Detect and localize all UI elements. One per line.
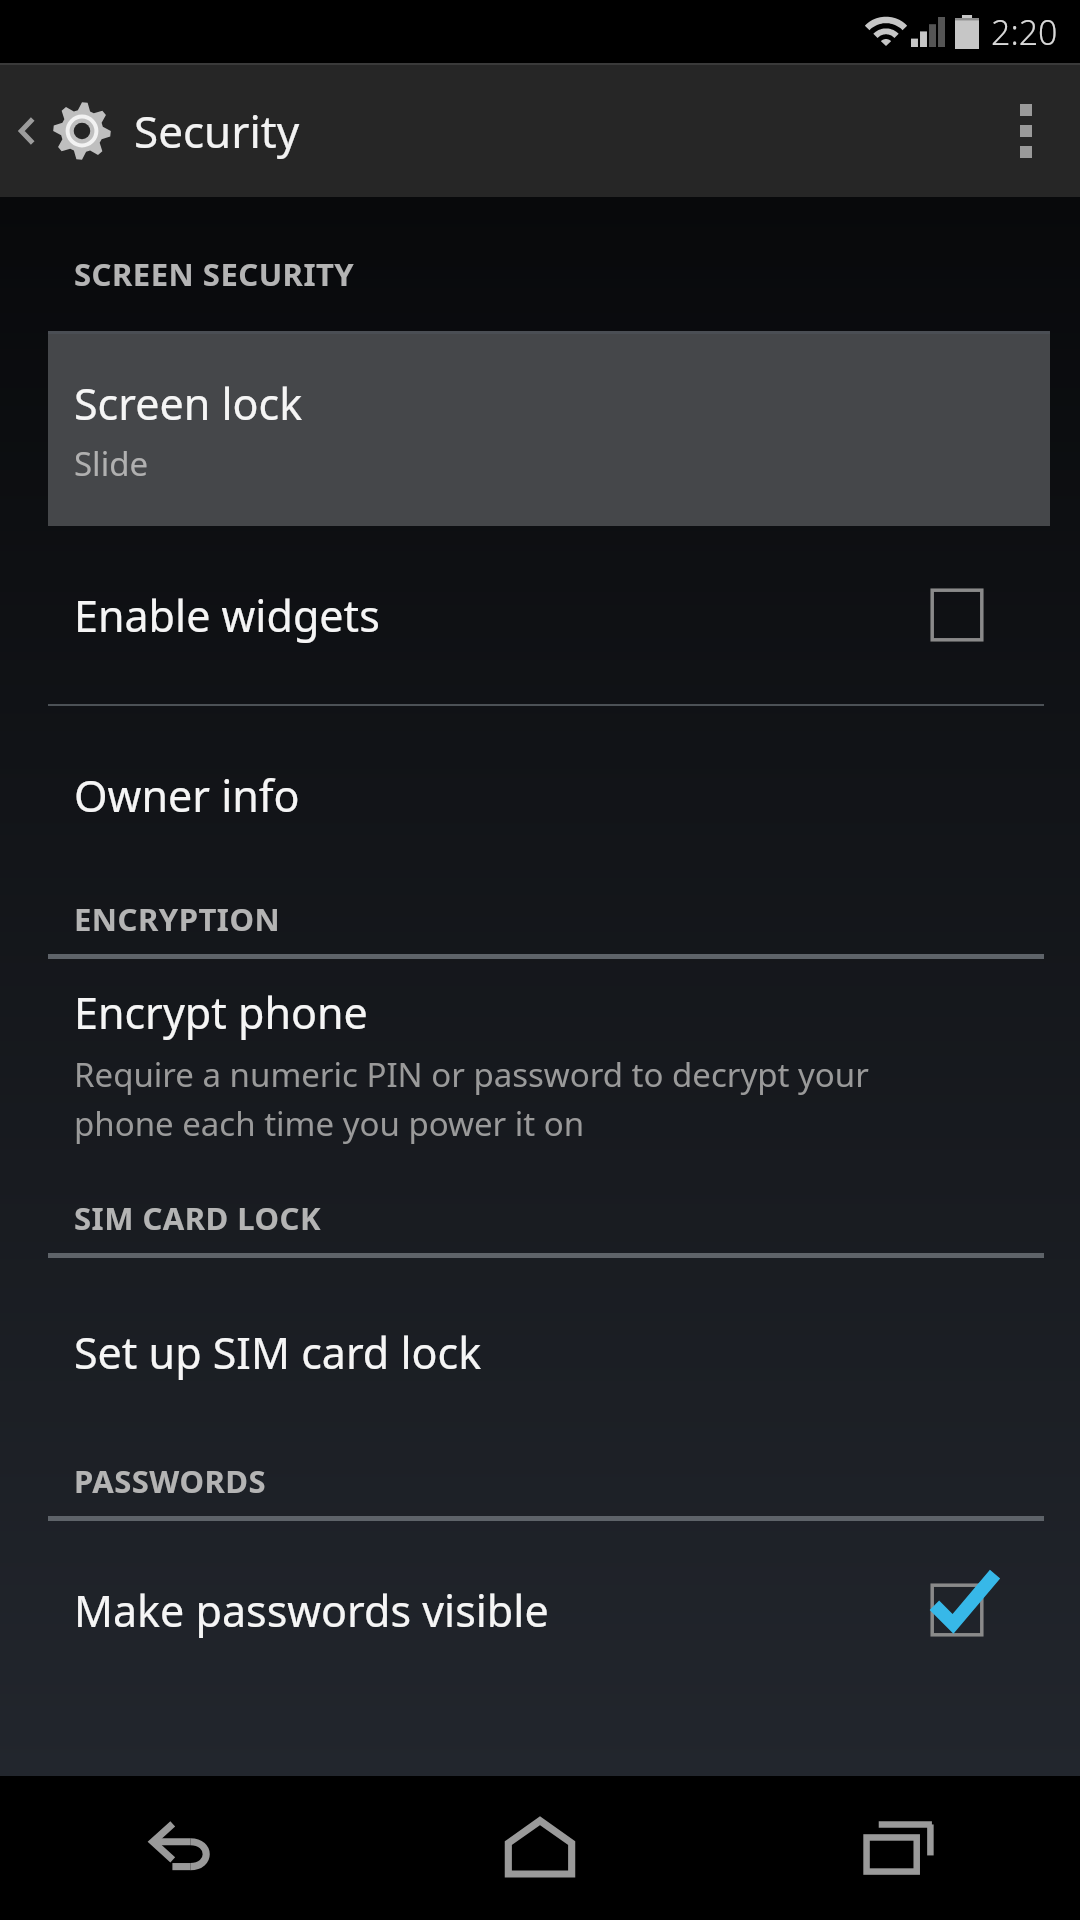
staticText: Encrypt phone [74, 983, 368, 1042]
staticText: PASSWORDS [74, 1460, 267, 1502]
button[interactable]: Navigate up, Security [0, 95, 316, 167]
staticText: ENCRYPTION [74, 898, 281, 940]
button[interactable]: Owner info [0, 706, 1080, 884]
button[interactable]: Recent apps [720, 1776, 1080, 1920]
staticText: 2:20 [991, 9, 1058, 55]
button[interactable]: Back [0, 1776, 360, 1920]
staticText: Make passwords visible [74, 1581, 926, 1640]
staticText: SCREEN SECURITY [74, 253, 355, 295]
button[interactable]: Make passwords visible [0, 1521, 1080, 1699]
staticText: SIM CARD LOCK [74, 1197, 322, 1239]
button[interactable]: Set up SIM card lock [0, 1258, 1080, 1446]
button[interactable]: Enable widgets [0, 526, 1080, 704]
staticText: Slide [74, 441, 149, 486]
button[interactable]: Home [360, 1776, 720, 1920]
staticText: Set up SIM card lock [74, 1323, 482, 1382]
button[interactable]: Screen lock [48, 334, 1050, 526]
button[interactable]: More options [972, 65, 1080, 197]
staticText: Screen lock [74, 374, 303, 433]
staticText: Security [134, 101, 300, 161]
staticText: Enable widgets [74, 586, 926, 645]
button[interactable]: Encrypt phone [0, 959, 1080, 1163]
staticText: Owner info [74, 766, 300, 825]
staticText: Require a numeric PIN or password to dec… [74, 1052, 970, 1145]
